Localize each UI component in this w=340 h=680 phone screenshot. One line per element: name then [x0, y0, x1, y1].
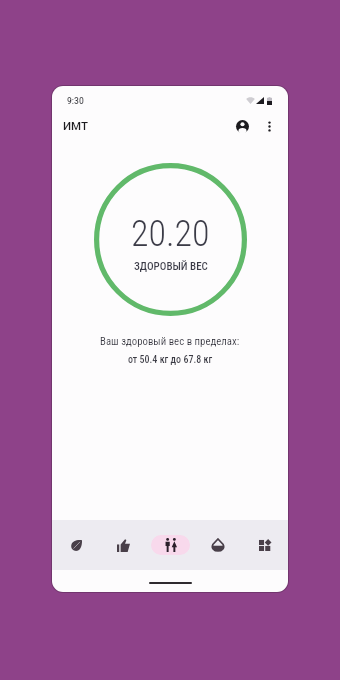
button[interactable]: Activity — [100, 520, 147, 570]
staticText: ИМТ — [63, 119, 89, 132]
button[interactable]: More — [241, 520, 288, 570]
staticText: от 50.4 кг до 67.8 кг — [128, 354, 213, 366]
button[interactable]: Water — [194, 520, 241, 570]
button[interactable]: Account — [231, 115, 253, 137]
staticText: 20.20 — [131, 213, 210, 255]
button[interactable]: More options — [258, 115, 280, 137]
staticText: 9:30 — [67, 96, 84, 106]
staticText: ЗДОРОВЫЙ ВЕС — [134, 260, 208, 273]
staticText: Ваш здоровый вес в пределах: — [100, 335, 240, 348]
button[interactable]: Nutrition — [52, 520, 100, 570]
button[interactable]: Body — [147, 520, 194, 570]
